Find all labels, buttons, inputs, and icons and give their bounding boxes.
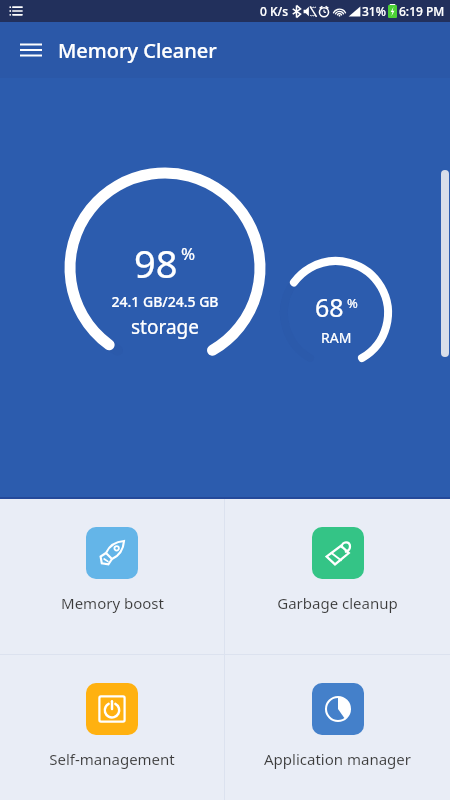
staticText: 68 [315,290,344,324]
staticText: % [181,242,196,265]
staticText: % [347,294,358,312]
staticText: 31% [362,3,386,19]
button[interactable]: Self-management [0,655,224,800]
button[interactable]: Garbage cleanup [225,499,450,654]
staticText: RAM [321,328,352,347]
staticText: Self-management [49,749,175,769]
button[interactable]: Application manager [225,655,450,800]
staticText: storage [131,314,199,340]
staticText: 6:19 PM [399,3,445,19]
staticText: 24.1 GB/24.5 GB [111,292,219,311]
button[interactable]: Memory boost [0,499,224,654]
staticText: 98 [134,237,178,289]
staticText: Memory boost [61,593,164,613]
button[interactable]: Open navigation menu [10,29,52,71]
staticText: Application manager [264,749,411,769]
staticText: Memory Cleaner [58,37,217,64]
staticText: Garbage cleanup [277,593,398,613]
staticText: 0 K/s [260,3,289,19]
